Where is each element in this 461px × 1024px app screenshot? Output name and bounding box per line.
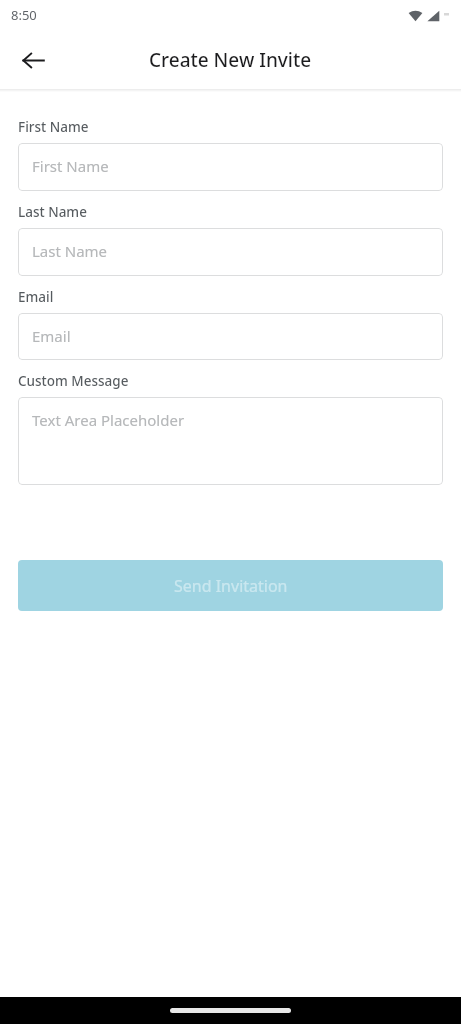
staticText: 8:50 xyxy=(11,6,37,24)
staticText: Custom Message xyxy=(18,372,129,390)
button[interactable]: Email xyxy=(18,313,443,360)
button[interactable]: Back xyxy=(10,37,56,83)
staticText: First Name xyxy=(18,118,89,136)
button[interactable]: Send Invitation xyxy=(18,560,443,611)
staticText: Text Area Placeholder xyxy=(32,410,185,430)
staticText: Last Name xyxy=(32,241,108,261)
button[interactable]: First Name xyxy=(18,143,443,191)
staticText: Send Invitation xyxy=(174,575,288,597)
staticText: First Name xyxy=(32,156,109,176)
staticText: Email xyxy=(18,288,54,306)
staticText: Create New Invite xyxy=(149,47,312,73)
button[interactable]: Text Area Placeholder xyxy=(18,397,443,485)
staticText: Last Name xyxy=(18,203,87,221)
staticText: Email xyxy=(32,326,71,346)
button[interactable]: Last Name xyxy=(18,228,443,276)
